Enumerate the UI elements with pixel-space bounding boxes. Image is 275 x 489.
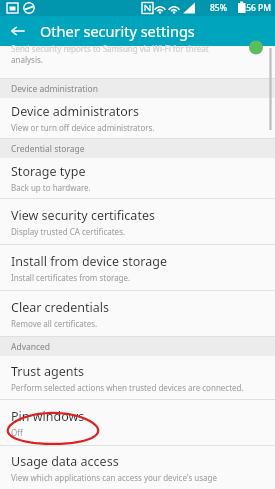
staticText: View which applications can access your …	[11, 472, 218, 483]
button[interactable]: Send security reports to Samsung via Wi-…	[0, 46, 275, 78]
button[interactable]: Device administrators	[0, 98, 275, 138]
button[interactable]: Install from device storage	[0, 245, 275, 290]
button[interactable]: Usage data access	[0, 446, 275, 489]
staticText: Usage data access	[11, 453, 119, 470]
staticText: 85%	[210, 2, 227, 14]
staticText: Back up to hardware.	[11, 182, 91, 193]
button[interactable]: Storage type	[0, 158, 275, 198]
staticText: analysis.	[11, 54, 43, 65]
staticText: 2:56 PM	[239, 2, 272, 14]
staticText: Storage type	[11, 163, 86, 180]
staticText: Display trusted CA certificates.	[11, 226, 126, 237]
button[interactable]: Trust agents	[0, 356, 275, 399]
button[interactable]: Navigate up	[4, 17, 32, 45]
button[interactable]: Pin windows	[0, 400, 275, 445]
staticText: Trust agents	[11, 363, 84, 380]
staticText: Device administrators	[11, 103, 140, 120]
staticText: Install certificates from storage.	[11, 272, 131, 283]
staticText: View security certificates	[11, 207, 155, 224]
staticText: Device administration	[11, 83, 98, 95]
staticText: Send security reports to Samsung via Wi-…	[11, 43, 209, 54]
staticText: Remove all certificates.	[11, 318, 98, 329]
staticText: Install from device storage	[11, 253, 167, 270]
staticText: Clear credentials	[11, 299, 109, 316]
staticText: Other security settings	[40, 21, 195, 41]
staticText: Advanced	[11, 341, 51, 353]
staticText: Credential storage	[11, 143, 85, 155]
staticText: View or turn off device administrators.	[11, 122, 155, 133]
staticText: Off	[11, 427, 23, 438]
staticText: Pin windows	[11, 408, 85, 425]
staticText: Perform selected actions when trusted de…	[11, 382, 244, 393]
button[interactable]: Clear credentials	[0, 291, 275, 336]
button[interactable]: View security certificates	[0, 199, 275, 244]
